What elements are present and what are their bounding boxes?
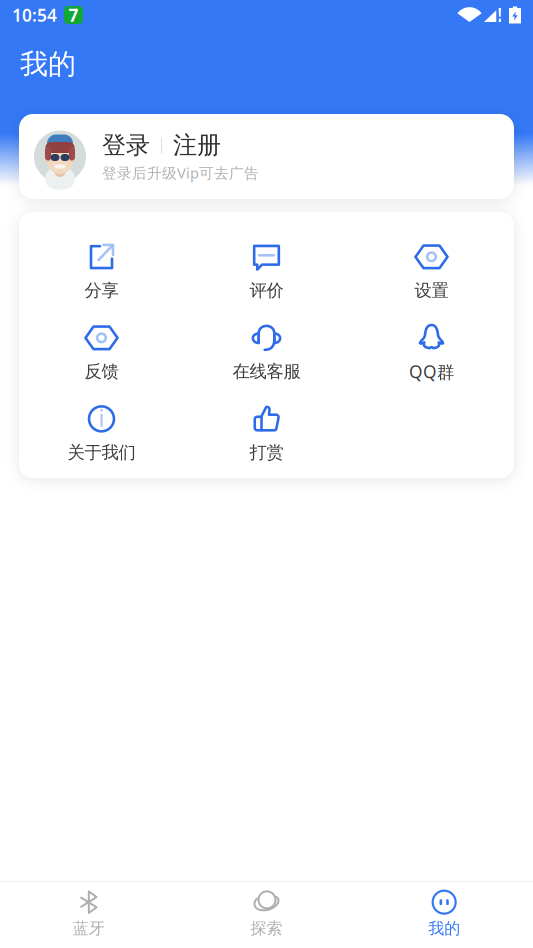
staticText: 我的 [428,919,460,938]
staticText: i [98,403,104,433]
staticText: 蓝牙 [73,919,105,938]
staticText: 7 [68,3,78,26]
button[interactable]: 我的 [355,879,533,948]
staticText: 注册 [173,130,221,160]
button[interactable]: 设置 [349,245,514,300]
staticText: 打赏 [249,442,283,463]
button[interactable]: QQ群 [349,326,514,381]
staticText: QQ群 [409,360,454,383]
staticText: 关于我们 [67,442,135,463]
button[interactable]: 打赏 [184,407,349,462]
button[interactable]: 分享 [19,245,184,300]
button[interactable]: i [19,407,184,462]
button[interactable]: 反馈 [19,326,184,381]
staticText: 10:54 [12,3,57,26]
staticText: 登录 [102,130,150,160]
staticText: 我的 [20,47,76,81]
staticText: 登录后升级Vip可去广告 [102,163,259,182]
button[interactable]: 登录 [19,114,514,199]
staticText: 反馈 [84,361,118,382]
button[interactable]: 探索 [178,879,355,948]
button[interactable]: 在线客服 [184,326,349,381]
staticText: 探索 [250,919,282,938]
staticText: 分享 [84,280,118,301]
button[interactable]: 评价 [184,245,349,300]
staticText: 评价 [249,280,283,301]
button[interactable]: 蓝牙 [0,879,178,948]
staticText: 设置 [414,280,448,301]
staticText: 在线客服 [232,361,300,382]
